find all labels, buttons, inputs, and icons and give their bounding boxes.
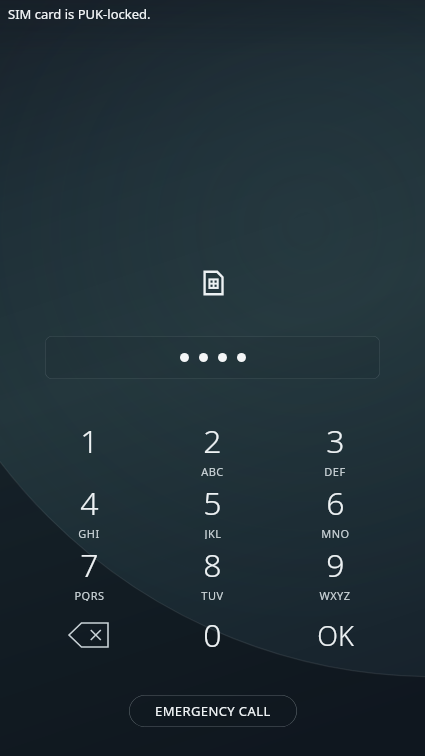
staticText: 1: [80, 419, 99, 463]
staticText: 7: [80, 543, 99, 587]
button[interactable]: EMERGENCY CALL: [129, 695, 297, 727]
button[interactable]: 8: [157, 543, 267, 601]
staticText: JKL: [204, 526, 222, 539]
button[interactable]: 7: [34, 543, 144, 601]
button[interactable]: 0: [157, 613, 267, 671]
button[interactable]: 3: [280, 419, 390, 477]
staticText: 4: [80, 481, 99, 525]
button[interactable]: [45, 336, 380, 379]
staticText: DEF: [324, 464, 346, 477]
staticText: 8: [203, 543, 222, 587]
button[interactable]: 1: [34, 419, 144, 477]
staticText: 6: [326, 481, 345, 525]
staticText: 0: [203, 613, 222, 657]
staticText: SIM card is PUK-locked.: [8, 5, 151, 23]
button[interactable]: 2: [157, 419, 267, 477]
staticText: 5: [203, 481, 222, 525]
staticText: 2: [203, 419, 222, 463]
staticText: ABC: [201, 464, 224, 477]
staticText: OK: [317, 617, 354, 654]
staticText: 3: [326, 419, 345, 463]
button[interactable]: OK: [285, 609, 385, 661]
button[interactable]: Delete: [43, 609, 135, 661]
button[interactable]: 5: [157, 481, 267, 539]
staticText: PQRS: [74, 588, 105, 601]
button[interactable]: 6: [280, 481, 390, 539]
button[interactable]: 4: [34, 481, 144, 539]
staticText: MNO: [321, 526, 350, 539]
staticText: GHI: [78, 526, 100, 539]
staticText: EMERGENCY CALL: [155, 702, 271, 720]
staticText: WXYZ: [319, 588, 351, 601]
button[interactable]: 9: [280, 543, 390, 601]
staticText: TUV: [201, 588, 224, 601]
staticText: 9: [326, 543, 345, 587]
